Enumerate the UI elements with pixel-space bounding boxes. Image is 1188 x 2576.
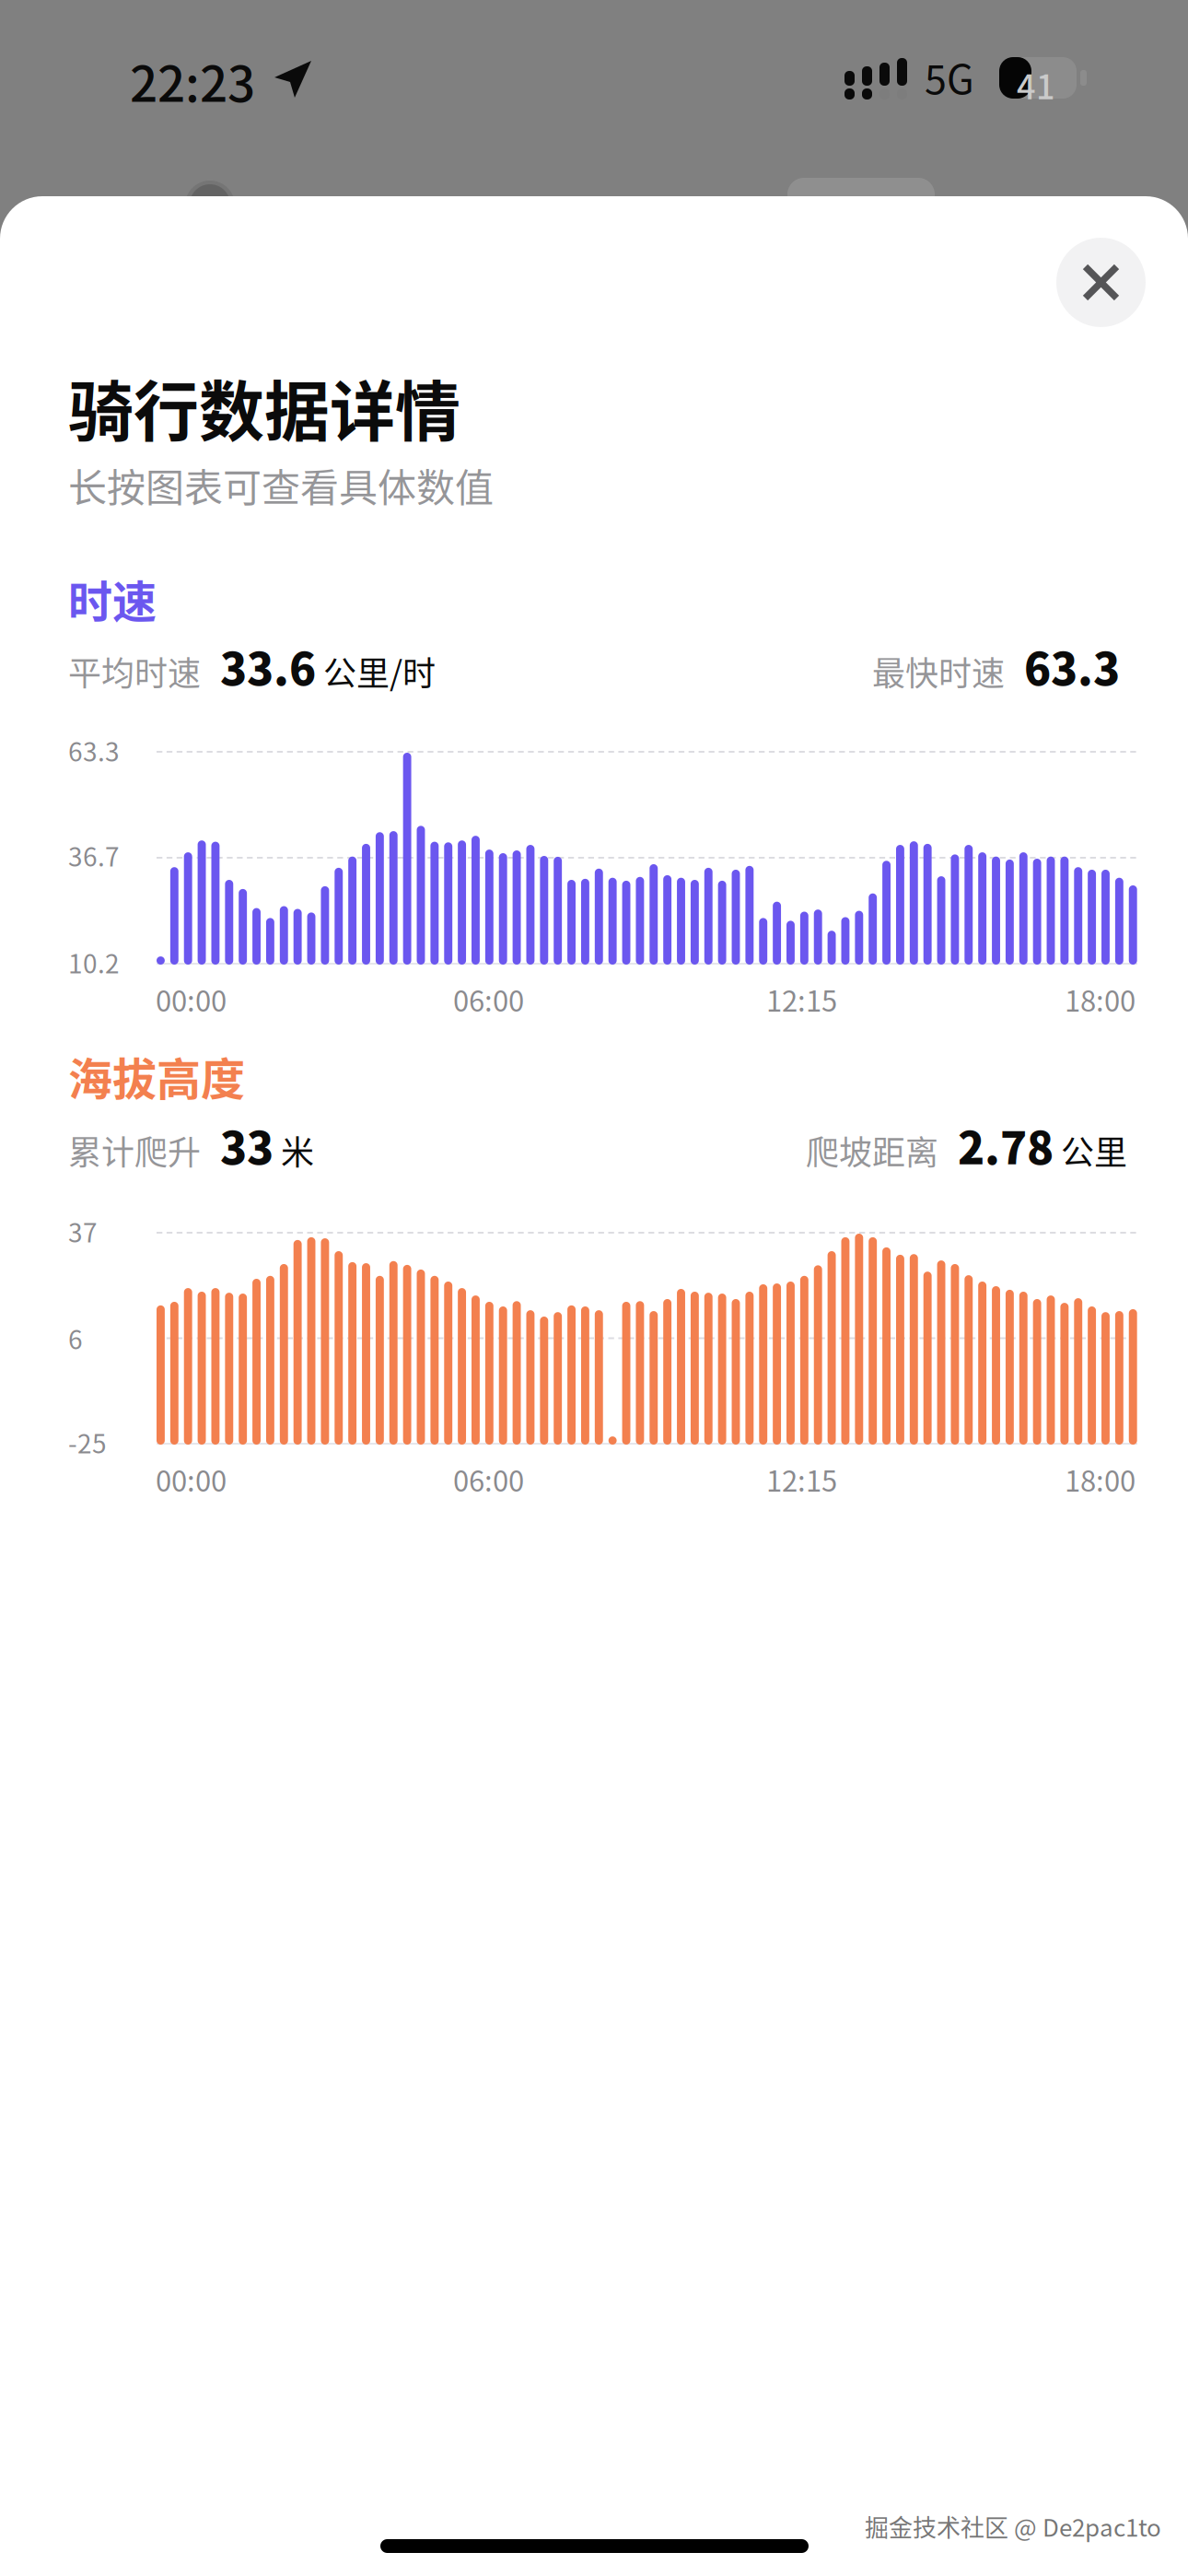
staticText: 18:00 xyxy=(1065,1458,1136,1500)
staticText: 累计爬升 xyxy=(68,1126,201,1174)
staticText: 平均时速 xyxy=(68,647,201,695)
staticText: 12:15 xyxy=(766,978,837,1020)
staticText: 33.6 xyxy=(220,634,316,698)
staticText: 36.7 xyxy=(68,837,120,874)
staticText: 公里/时 xyxy=(323,647,436,695)
staticText: 33 xyxy=(220,1113,274,1177)
staticText: 22:23 xyxy=(130,45,255,116)
staticText: 06:00 xyxy=(453,978,524,1020)
staticText: 海拔高度 xyxy=(68,1044,245,1108)
staticText: 18:00 xyxy=(1065,978,1136,1020)
staticText: 37 xyxy=(68,1212,98,1250)
staticText: 06:00 xyxy=(453,1458,524,1500)
staticText: 00:00 xyxy=(156,978,227,1020)
staticText: 6 xyxy=(68,1319,83,1357)
staticText: 时速 xyxy=(68,567,157,631)
staticText: 12:15 xyxy=(766,1458,837,1500)
staticText: 00:00 xyxy=(156,1458,227,1500)
staticText: 10.2 xyxy=(68,943,120,981)
staticText: 41 xyxy=(1017,61,1055,109)
staticText: 最快时速 xyxy=(872,647,1005,695)
button[interactable]: Close xyxy=(1056,238,1146,327)
staticText: 5G xyxy=(925,48,974,105)
staticText: 掘金技术社区 @ De2pac1to xyxy=(865,2509,1161,2543)
staticText: 米 xyxy=(281,1126,314,1174)
staticText: 63.3 xyxy=(68,732,120,769)
staticText: 长按图表可查看具体数值 xyxy=(68,457,494,513)
staticText: -25 xyxy=(68,1423,107,1461)
staticText: 63.3 xyxy=(1024,634,1120,698)
staticText: 爬坡距离 xyxy=(806,1126,938,1174)
staticText: 公里 xyxy=(1061,1126,1127,1174)
staticText: 2.78 xyxy=(958,1113,1054,1177)
staticText: 骑行数据详情 xyxy=(68,359,460,454)
